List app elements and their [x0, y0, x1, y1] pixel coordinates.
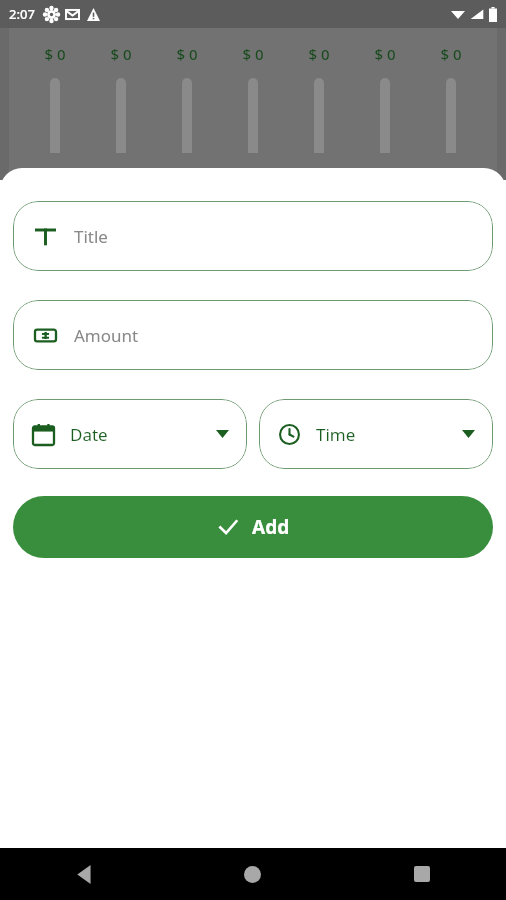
staticText: $ 0 — [440, 44, 462, 64]
button[interactable]: Date — [13, 399, 247, 469]
staticText: $ 0 — [242, 44, 264, 64]
staticText: Add — [252, 514, 290, 540]
staticText: $ 0 — [308, 44, 330, 64]
button[interactable]: Recent apps — [337, 848, 506, 900]
staticText: 2:07 — [9, 5, 35, 23]
staticText: $ 0 — [44, 44, 66, 64]
staticText: Time — [316, 423, 356, 446]
staticText: Amount — [74, 324, 139, 347]
button[interactable]: Back — [0, 848, 168, 900]
staticText: Date — [70, 423, 108, 446]
staticText: $ 0 — [374, 44, 396, 64]
button[interactable]: Time — [259, 399, 493, 469]
staticText: $ 0 — [110, 44, 132, 64]
staticText: Title — [74, 225, 108, 248]
staticText: $ 0 — [176, 44, 198, 64]
button[interactable]: Add — [13, 496, 493, 558]
button[interactable]: Home — [168, 848, 337, 900]
button[interactable]: Amount — [13, 300, 493, 370]
button[interactable]: Title — [13, 201, 493, 271]
